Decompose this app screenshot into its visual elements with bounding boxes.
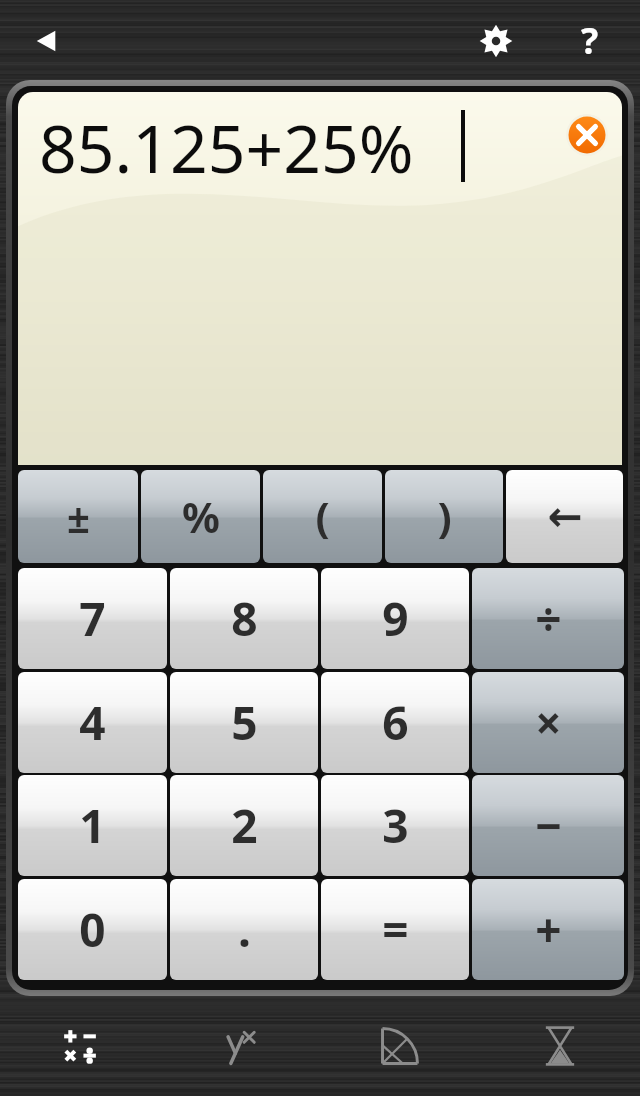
staticText: ) (437, 488, 452, 545)
staticText: 85.125+25% (39, 102, 414, 192)
button[interactable]: ) (385, 470, 503, 563)
staticText: 0 (79, 898, 106, 961)
button[interactable]: 0 (18, 879, 167, 980)
button[interactable]: Back (20, 17, 74, 65)
button[interactable]: 6 (321, 672, 469, 773)
staticText: 1 (79, 794, 106, 857)
staticText: 5 (231, 691, 258, 754)
staticText: ÷ (535, 587, 562, 650)
staticText: − (535, 794, 562, 857)
button[interactable]: 5 (170, 672, 318, 773)
button[interactable]: Basic operations (0, 996, 160, 1096)
button[interactable]: 7 (18, 568, 167, 669)
button[interactable]: 9 (321, 568, 469, 669)
button[interactable]: Powers (160, 996, 320, 1096)
button[interactable]: = (321, 879, 469, 980)
button[interactable]: ( (263, 470, 382, 563)
button[interactable]: Help (564, 12, 616, 68)
button[interactable]: History (480, 996, 640, 1096)
button[interactable]: . (170, 879, 318, 980)
button[interactable]: 1 (18, 775, 167, 876)
button[interactable]: % (141, 470, 260, 563)
button[interactable]: Geometry (320, 996, 480, 1096)
button[interactable]: 4 (18, 672, 167, 773)
staticText: ? (581, 16, 599, 65)
staticText: 2 (231, 794, 258, 857)
staticText: 7 (79, 587, 106, 650)
staticText: ± (67, 490, 90, 544)
staticText: 6 (382, 691, 409, 754)
staticText: = (382, 898, 409, 961)
staticText: . (238, 898, 251, 961)
button[interactable]: 8 (170, 568, 318, 669)
button[interactable]: 2 (170, 775, 318, 876)
button[interactable]: − (472, 775, 624, 876)
staticText: 8 (231, 587, 258, 650)
button[interactable]: 85.125+25% (18, 92, 622, 465)
button[interactable]: Backspace (506, 470, 623, 563)
button[interactable]: Clear (566, 114, 608, 156)
staticText: 4 (79, 691, 106, 754)
staticText: × (535, 691, 562, 754)
button[interactable]: ± (18, 470, 138, 563)
staticText: 3 (382, 794, 409, 857)
button[interactable]: Settings (470, 15, 522, 67)
button[interactable]: + (472, 879, 624, 980)
staticText: ( (315, 488, 330, 545)
button[interactable]: 3 (321, 775, 469, 876)
staticText: 9 (382, 587, 409, 650)
button[interactable]: × (472, 672, 624, 773)
staticText: + (535, 898, 562, 961)
staticText: ← (547, 492, 583, 541)
button[interactable]: ÷ (472, 568, 624, 669)
staticText: % (182, 488, 220, 545)
